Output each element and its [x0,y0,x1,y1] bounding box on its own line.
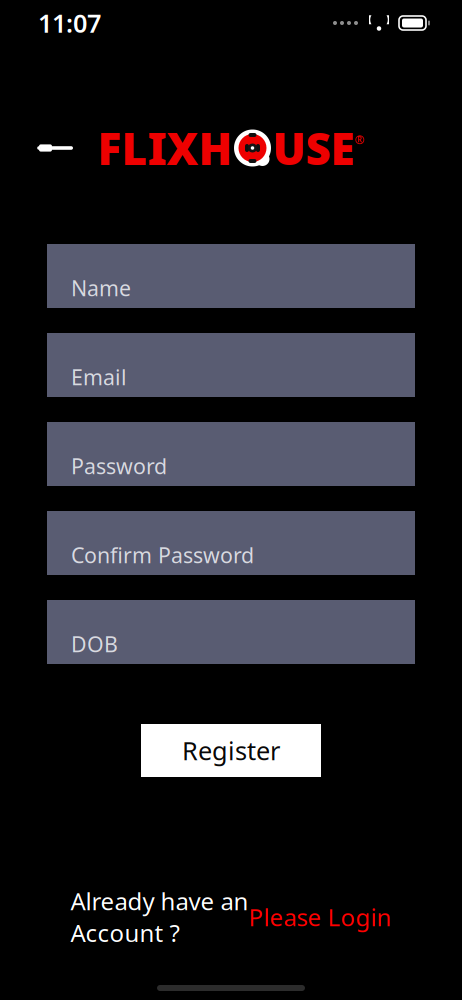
button[interactable]: Confirm Password [47,511,415,575]
button[interactable]: Password [47,422,415,486]
button[interactable]: Back [26,123,84,173]
button[interactable]: Already have an Account ? [56,877,405,957]
staticText: Name [71,274,131,302]
staticText: Confirm Password [71,541,254,569]
staticText: Please Login [248,901,391,933]
staticText: FLIXH [97,119,232,177]
button[interactable]: Name [47,244,415,308]
staticText: Register [182,734,280,767]
staticText: 11:07 [38,6,101,40]
staticText: Password [71,452,167,480]
staticText: USE [272,119,354,177]
staticText: DOB [71,630,118,658]
staticText: ® [354,131,364,147]
staticText: Email [71,363,127,391]
button[interactable]: DOB [47,600,415,664]
staticText: Already have an Account ? [70,885,248,949]
button[interactable]: Email [47,333,415,397]
button[interactable]: Register [141,724,321,777]
